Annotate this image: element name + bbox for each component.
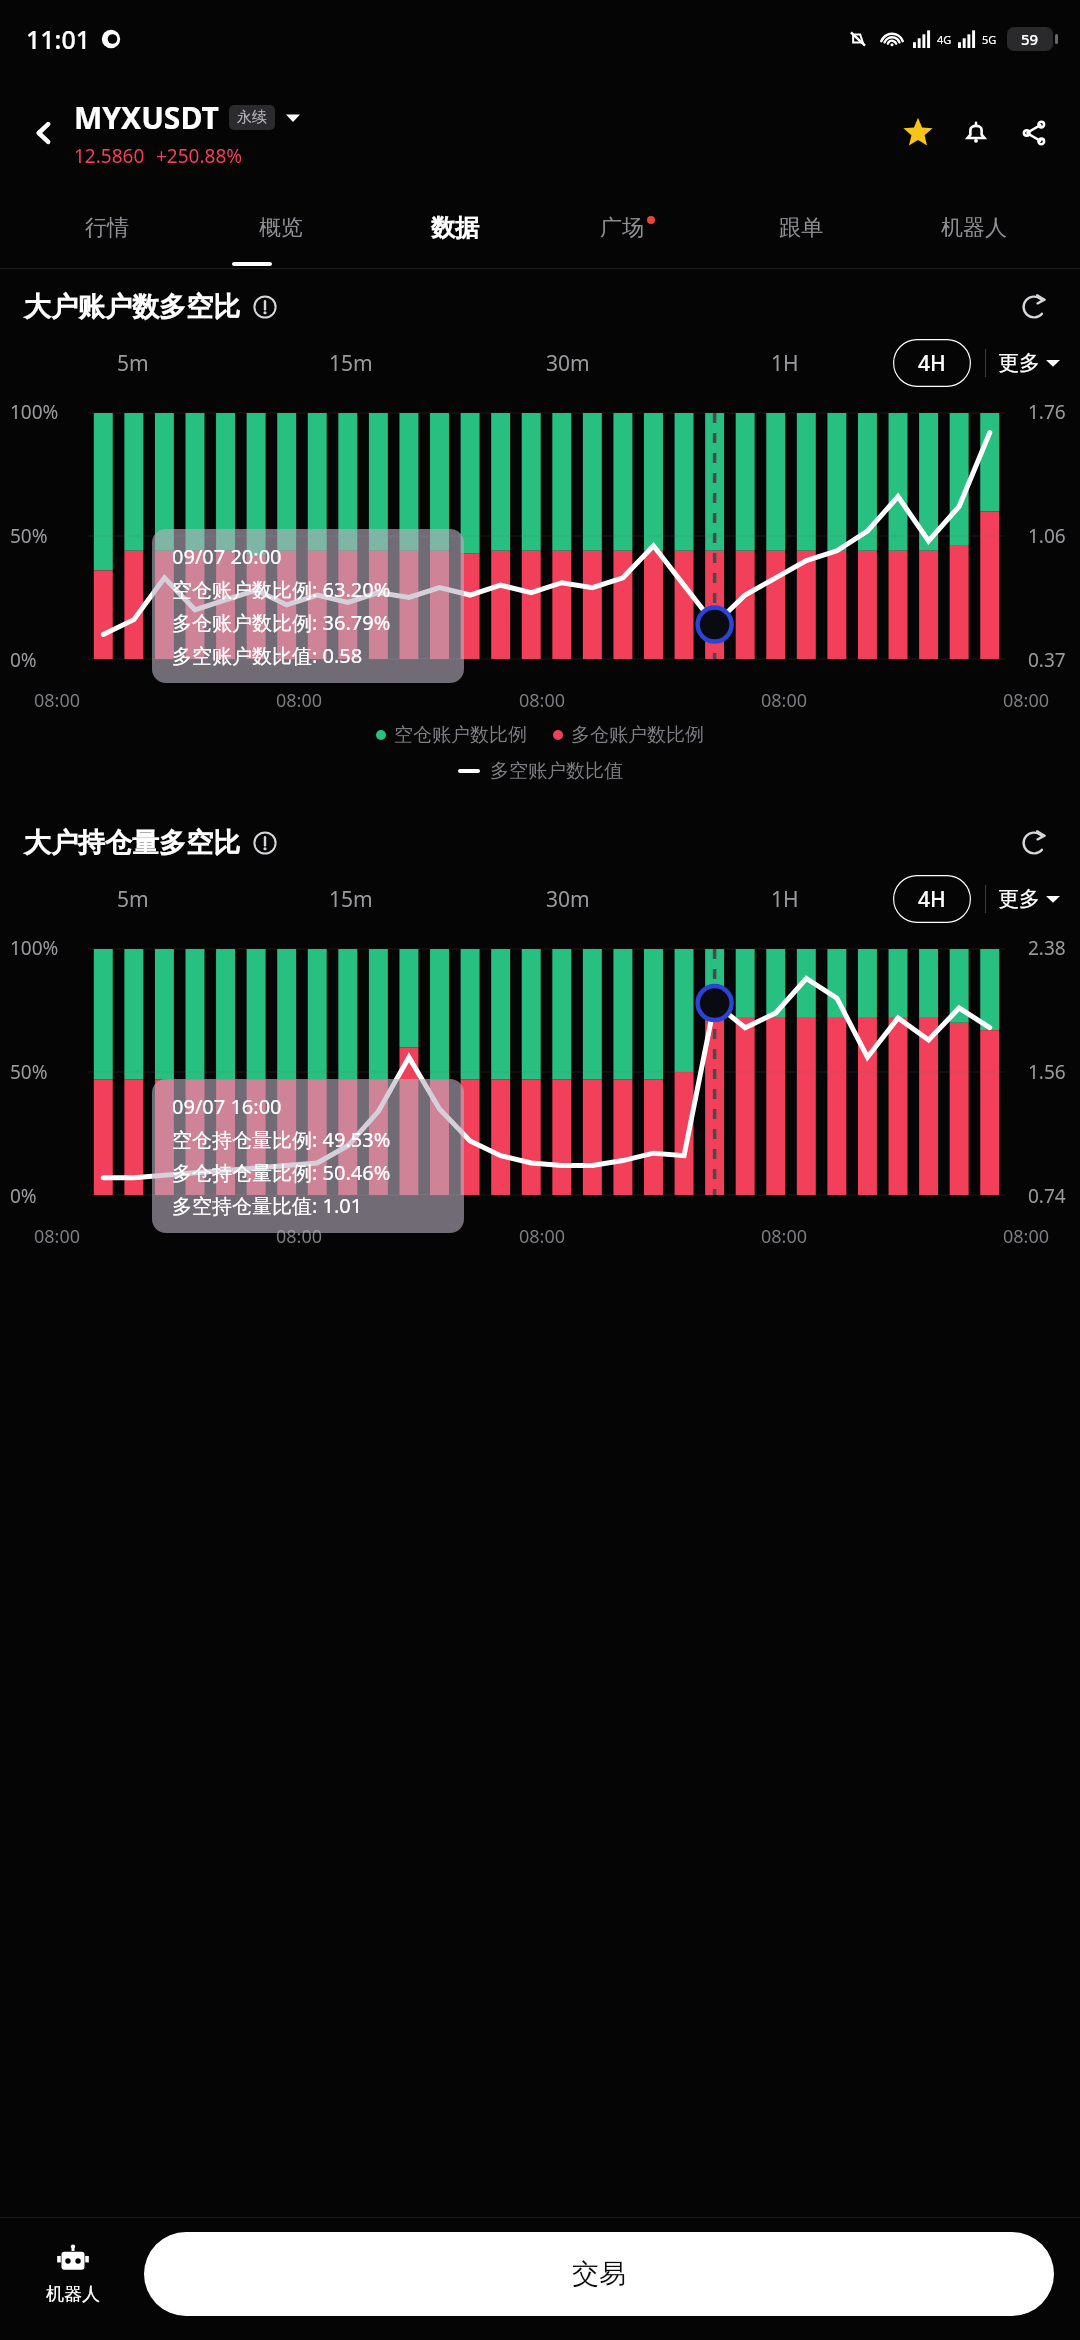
staticText: 15m [329, 349, 373, 378]
staticText: 11:01 [26, 22, 91, 56]
staticText: 1.76 [1028, 399, 1066, 425]
staticText: 大户持仓量多空比 [24, 826, 240, 860]
staticText: 更多 [998, 886, 1040, 912]
button[interactable]: 行情 [20, 188, 194, 268]
button[interactable]: 数据 [368, 188, 541, 268]
staticText: 50% [10, 523, 48, 549]
staticText: 09/07 20:00 [172, 543, 282, 570]
staticText: 5G [982, 32, 997, 47]
staticText: 交易 [572, 2257, 626, 2291]
staticText: 12.5860 [74, 143, 145, 169]
button[interactable]: Info [250, 292, 280, 322]
staticText: 08:00 [34, 1224, 81, 1249]
button[interactable]: 机器人 [18, 2218, 128, 2330]
staticText: 机器人 [46, 2283, 100, 2306]
staticText: 永续 [237, 108, 267, 127]
button[interactable]: 4H [893, 875, 971, 923]
button[interactable]: 5m [24, 349, 242, 378]
button[interactable]: 广场 [541, 188, 714, 268]
button[interactable]: 30m [459, 885, 676, 914]
button[interactable]: 30m [459, 349, 676, 378]
button[interactable]: 4H [893, 339, 971, 387]
button[interactable]: Expand chart [1012, 821, 1056, 865]
button[interactable]: 更多 [998, 350, 1060, 376]
button[interactable]: Alerts [952, 109, 1000, 157]
staticText: 概览 [259, 214, 303, 242]
staticText: 大户账户数多空比 [24, 290, 240, 324]
staticText: MYXUSDT [74, 97, 219, 138]
staticText: 0% [10, 1183, 37, 1209]
staticText: 30m [546, 349, 590, 378]
button[interactable]: Back [20, 109, 68, 157]
button[interactable]: 概览 [194, 188, 368, 268]
staticText: 08:00 [519, 688, 566, 713]
staticText: 跟单 [779, 214, 823, 242]
staticText: 数据 [431, 213, 479, 243]
staticText: 08:00 [1003, 1224, 1050, 1249]
staticText: 09/07 16:00 [172, 1093, 282, 1120]
staticText: 4H [918, 349, 946, 378]
button[interactable]: 跟单 [714, 188, 887, 268]
staticText: 0% [10, 647, 37, 673]
button[interactable]: Info [250, 828, 280, 858]
staticText: 空仓持仓量比例: 49.53% [172, 1126, 391, 1153]
staticText: 5m [117, 349, 149, 378]
staticText: 100% [10, 935, 59, 961]
button[interactable]: 更多 [998, 886, 1060, 912]
button[interactable]: 1H [676, 885, 893, 914]
staticText: 机器人 [941, 214, 1007, 242]
staticText: 4H [918, 885, 946, 914]
staticText: 0.37 [1028, 647, 1066, 673]
staticText: 0.74 [1028, 1183, 1066, 1209]
staticText: 08:00 [519, 1224, 566, 1249]
staticText: 多空账户数比值 [490, 759, 623, 783]
button[interactable]: 永续 [237, 108, 267, 127]
staticText: 5m [117, 885, 149, 914]
staticText: 多仓账户数比例 [571, 723, 704, 747]
staticText: 空仓账户数比例: 63.20% [172, 576, 391, 603]
button[interactable]: Select contract [283, 108, 303, 128]
staticText: 50% [10, 1059, 48, 1085]
staticText: 更多 [998, 350, 1040, 376]
button[interactable]: 5m [24, 885, 242, 914]
staticText: 4G [937, 32, 952, 47]
staticText: 行情 [85, 214, 129, 242]
staticText: 2.38 [1028, 935, 1066, 961]
staticText: 空仓账户数比例 [394, 723, 527, 747]
button[interactable]: Share [1010, 109, 1058, 157]
button[interactable]: 交易 [144, 2232, 1054, 2316]
staticText: 多仓账户数比例: 36.79% [172, 609, 391, 636]
button[interactable]: Favorite [894, 109, 942, 157]
staticText: 59 [1021, 29, 1039, 49]
staticText: 15m [329, 885, 373, 914]
button[interactable]: 1H [676, 349, 893, 378]
staticText: 100% [10, 399, 59, 425]
staticText: 08:00 [276, 1224, 323, 1249]
staticText: 08:00 [34, 688, 81, 713]
button[interactable]: 15m [242, 885, 459, 914]
staticText: 08:00 [761, 1224, 808, 1249]
staticText: 多空账户数比值: 0.58 [172, 642, 363, 669]
staticText: 多空持仓量比值: 1.01 [172, 1192, 363, 1219]
staticText: 08:00 [1003, 688, 1050, 713]
button[interactable]: Expand chart [1012, 285, 1056, 329]
staticText: 广场 [600, 214, 644, 242]
staticText: 1.06 [1028, 523, 1066, 549]
staticText: +250.88% [156, 143, 243, 169]
staticText: 1.56 [1028, 1059, 1066, 1085]
staticText: 1H [771, 349, 799, 378]
staticText: 08:00 [276, 688, 323, 713]
staticText: 多仓持仓量比例: 50.46% [172, 1159, 391, 1186]
staticText: 1H [771, 885, 799, 914]
button[interactable]: 机器人 [887, 188, 1060, 268]
button[interactable]: 15m [242, 349, 459, 378]
staticText: 30m [546, 885, 590, 914]
staticText: 08:00 [761, 688, 808, 713]
